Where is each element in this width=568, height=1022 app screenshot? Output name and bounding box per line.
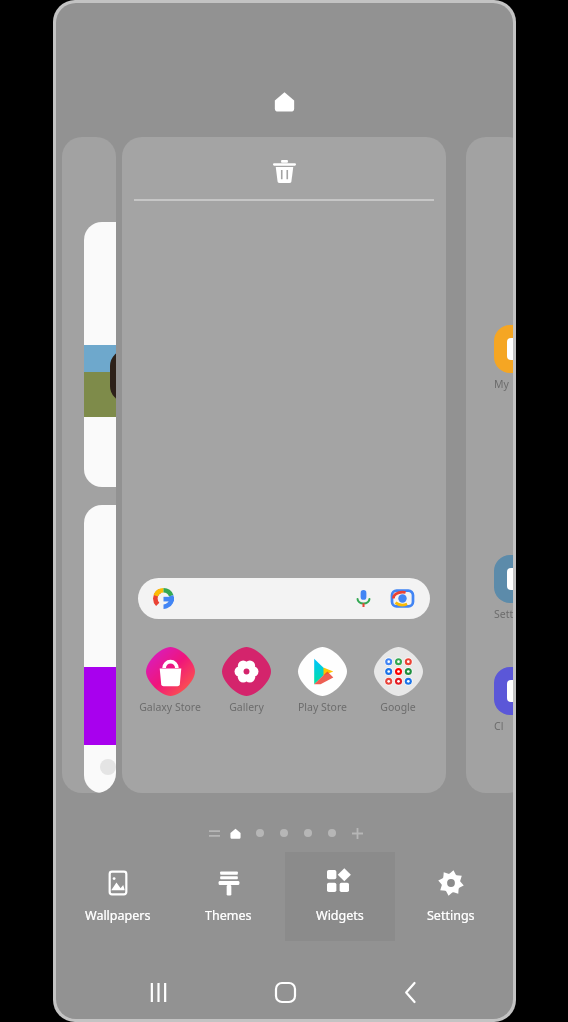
staticText: Google <box>380 700 416 714</box>
button[interactable] <box>326 827 338 839</box>
button[interactable]: Back <box>387 968 435 1016</box>
button[interactable]: Settings <box>395 852 506 941</box>
staticText: Galaxy Store <box>139 700 201 714</box>
staticText: Play Store <box>298 700 347 714</box>
button[interactable]: Themes <box>173 852 284 941</box>
button[interactable]: Google <box>362 647 434 714</box>
staticText: Wallpapers <box>85 907 151 924</box>
button[interactable]: Home screen <box>272 89 296 113</box>
button[interactable]: Play Store <box>286 647 358 714</box>
button[interactable]: Home page <box>228 826 242 840</box>
staticText: Settings <box>427 907 475 924</box>
button[interactable] <box>302 827 314 839</box>
button[interactable]: Recents <box>134 968 182 1016</box>
button[interactable]: Remove page <box>266 153 302 189</box>
staticText: Cl <box>494 719 504 733</box>
staticText: Widgets <box>316 907 364 924</box>
staticText: My <box>494 377 509 391</box>
button[interactable] <box>278 827 290 839</box>
button[interactable]: Galaxy Store <box>134 647 206 714</box>
button[interactable]: Add page <box>349 825 365 841</box>
staticText: Themes <box>205 907 252 924</box>
button[interactable]: Page list <box>206 825 222 841</box>
button[interactable]: Google search <box>138 578 430 619</box>
button[interactable]: Wallpapers <box>62 852 173 941</box>
button[interactable] <box>254 827 266 839</box>
button[interactable]: Home <box>261 968 309 1016</box>
staticText: Gallery <box>229 700 264 714</box>
button[interactable]: Widgets <box>284 852 395 941</box>
staticText: Sett <box>494 607 513 621</box>
button[interactable]: Gallery <box>210 647 282 714</box>
